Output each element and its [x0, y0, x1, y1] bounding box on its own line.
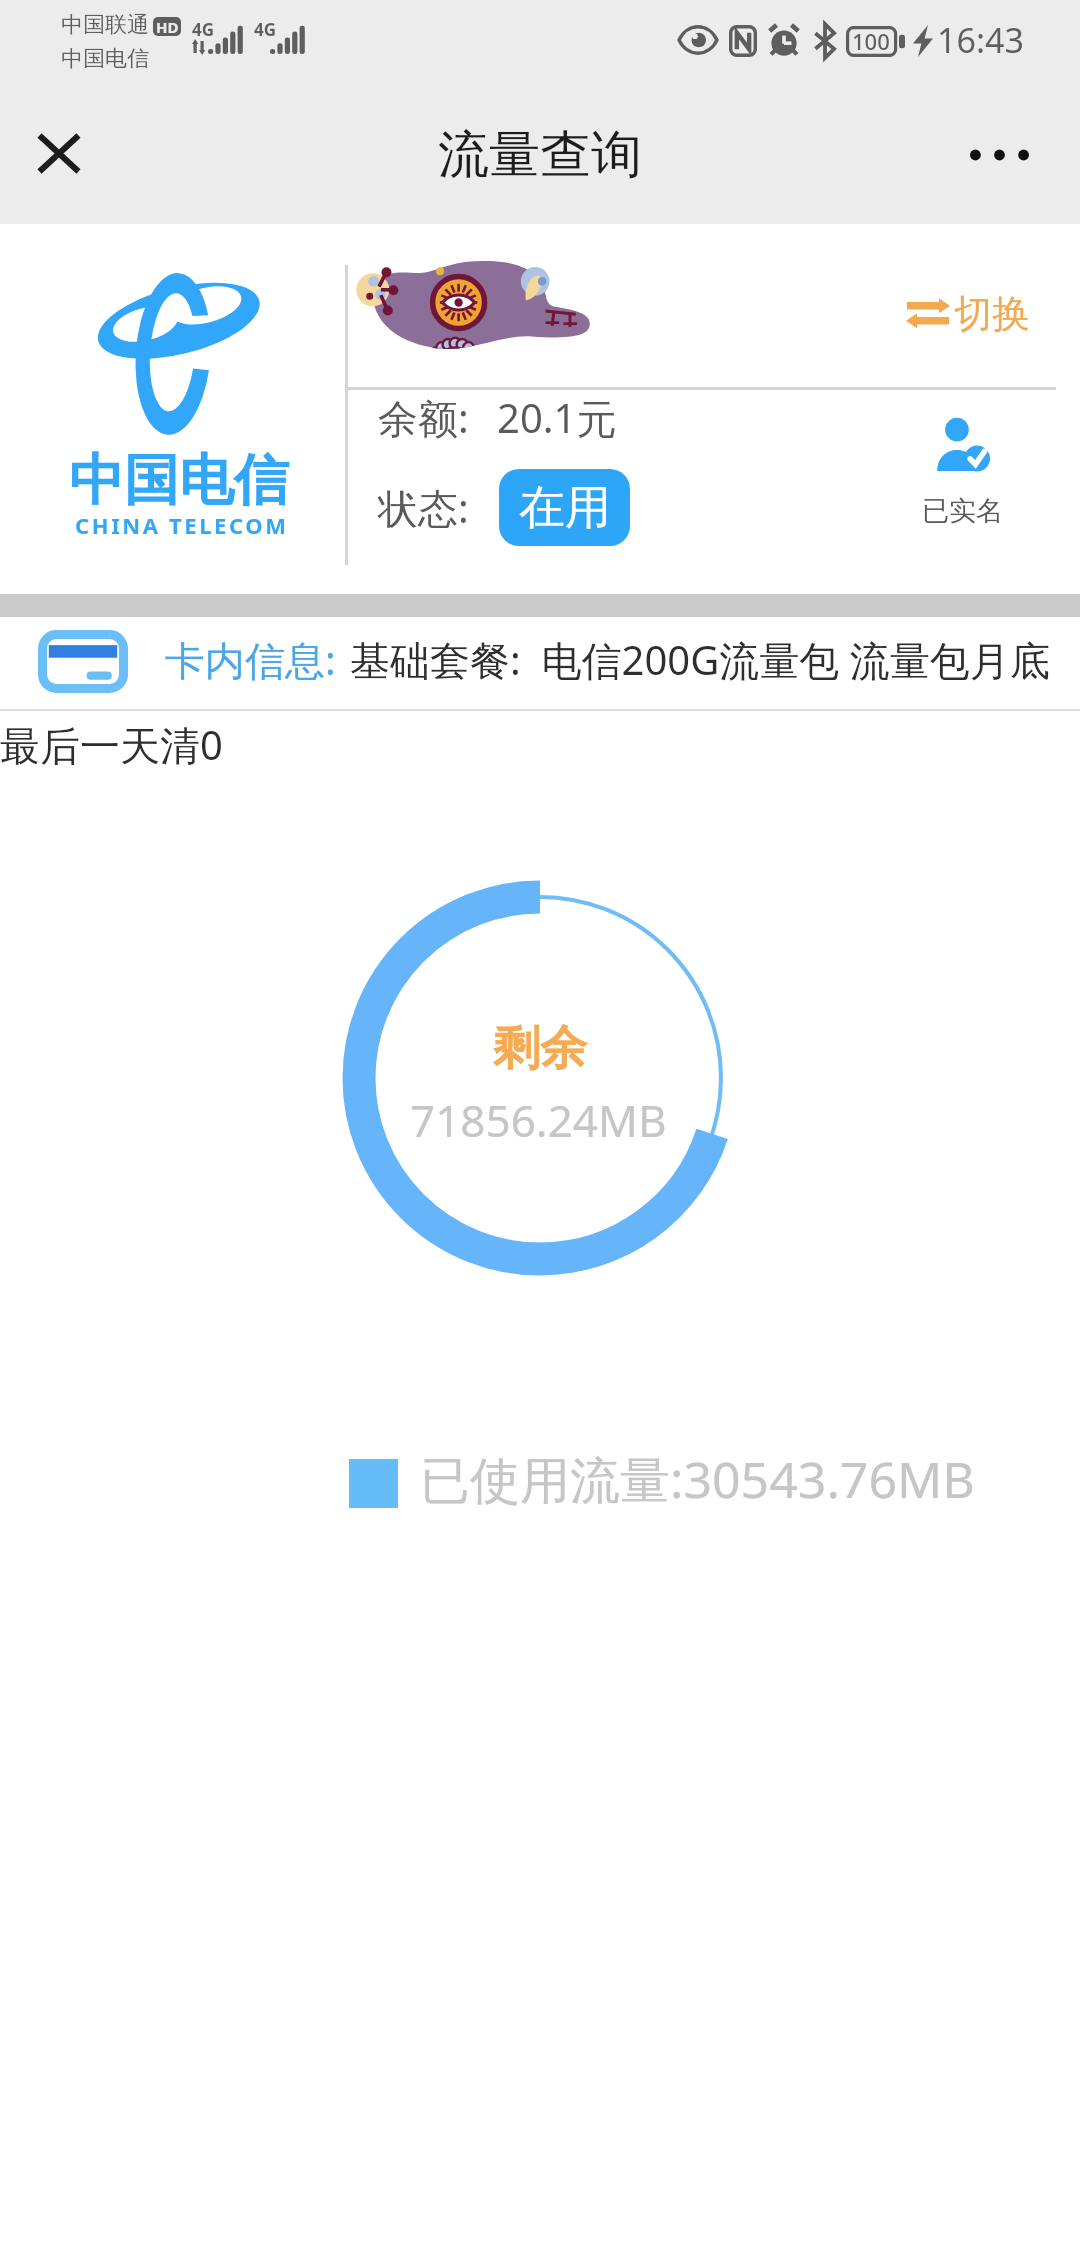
staticText: 4G [192, 18, 215, 41]
staticText: 基础套餐: 电信200G流量包 流量包月底 [350, 632, 1050, 687]
staticText: 状态: [378, 480, 469, 535]
button[interactable]: 剩余 [340, 878, 740, 1278]
staticText: 16:43 [937, 17, 1024, 63]
staticText: 中国电信 [61, 45, 149, 73]
staticText: 71856.24MB [410, 1090, 667, 1150]
button[interactable]: 切换 [906, 290, 1030, 338]
staticText: 100 [852, 26, 890, 56]
staticText: 4G [254, 18, 277, 41]
staticText: 在用 [519, 479, 611, 537]
staticText: 20.1元 [497, 390, 617, 445]
staticText: 流量查询 [438, 123, 642, 187]
staticText: 余额: [378, 390, 469, 445]
staticText: 卡内信息: [165, 632, 336, 687]
staticText: 切换 [954, 290, 1030, 338]
staticText: 中国电信 [69, 446, 289, 515]
button[interactable]: 已实名 [895, 418, 1030, 528]
button[interactable]: More options [956, 112, 1042, 198]
staticText: 已实名 [922, 494, 1003, 528]
staticText: 最后一天清0 [0, 717, 223, 772]
staticText: 剩余 [493, 1019, 587, 1078]
staticText: HD [156, 17, 179, 36]
button[interactable]: 在用 [499, 469, 630, 546]
staticText: 中国联通 [61, 11, 149, 39]
staticText: 已使用流量:30543.76MB [420, 1445, 975, 1513]
staticText: CHINA TELECOM [75, 510, 289, 540]
button[interactable]: 卡内信息: [0, 617, 1080, 709]
button[interactable]: Close [16, 110, 102, 196]
